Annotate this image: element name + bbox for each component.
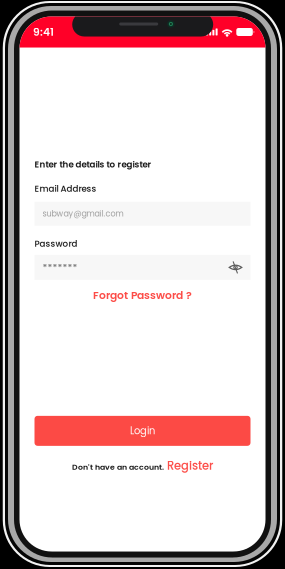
button[interactable]: Show password [228, 260, 242, 274]
staticText: Login [130, 424, 155, 438]
staticText: Don't have an account. [72, 462, 164, 473]
staticText: Email Address [34, 183, 96, 195]
staticText: 9:41 [33, 24, 54, 39]
staticText: Password [34, 238, 77, 250]
staticText: Enter the details to register [34, 158, 151, 171]
button[interactable]: Forgot Password ? [93, 288, 192, 303]
staticText: ******* [42, 261, 77, 274]
staticText: Forgot Password ? [93, 288, 192, 303]
staticText: Register [167, 458, 213, 474]
button[interactable]: Login [34, 416, 250, 446]
button[interactable]: Register [167, 458, 213, 474]
staticText: subway@gmail.com [42, 208, 123, 219]
